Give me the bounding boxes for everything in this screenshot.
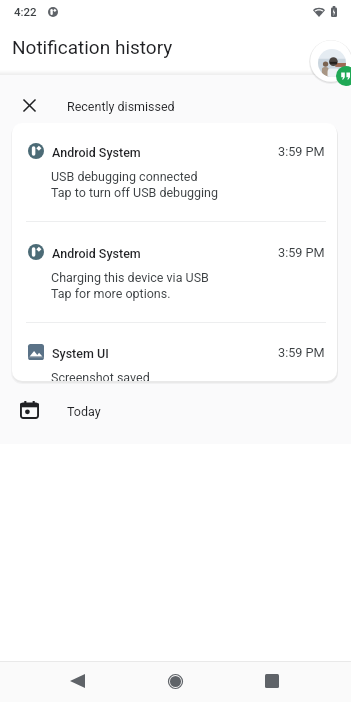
staticText: 3:59 PM [278,345,325,360]
button[interactable]: Today [0,381,351,444]
button[interactable]: Home [151,661,199,702]
button[interactable]: Account [309,39,351,83]
staticText: 3:59 PM [278,245,325,260]
button[interactable]: System UI [12,324,337,381]
staticText: Today [67,404,101,419]
staticText: USB debugging connected [51,169,198,184]
staticText: Recently dismissed [67,99,175,114]
button[interactable]: Android System [12,123,337,224]
button[interactable]: Android System [12,224,337,325]
staticText: Screenshot saved [51,370,150,381]
staticText: 3:59 PM [278,144,325,159]
staticText: Charging this device via USB [51,270,209,285]
button[interactable]: Back [53,660,101,701]
button[interactable]: Recent apps [248,660,296,701]
staticText: Tap for more options. [51,286,171,301]
staticText: 4:22 [14,5,37,18]
staticText: Android System [52,145,141,160]
staticText: Tap to turn off USB debugging [51,185,219,200]
staticText: System UI [52,346,109,361]
staticText: Android System [52,246,141,261]
staticText: Notification history [12,36,173,58]
button[interactable]: Close [15,91,43,119]
